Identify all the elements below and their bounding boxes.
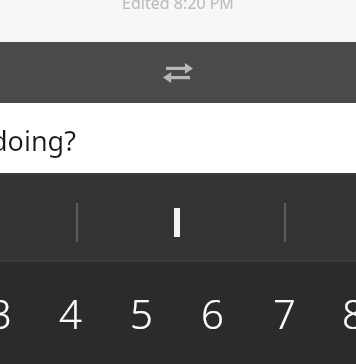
button[interactable]: Number picker xyxy=(0,262,356,364)
staticText: doing? xyxy=(0,122,76,159)
button[interactable]: Value ruler xyxy=(0,173,356,262)
staticText: 6 xyxy=(201,286,224,340)
button[interactable]: Swap xyxy=(156,51,200,95)
staticText: 7 xyxy=(273,286,296,340)
staticText: 8 xyxy=(342,286,356,340)
staticText: 4 xyxy=(59,286,82,340)
staticText: 5 xyxy=(130,286,153,340)
button[interactable]: doing? xyxy=(0,103,356,173)
staticText: Edited 8:20 PM xyxy=(122,0,234,14)
staticText: 3 xyxy=(0,286,12,340)
